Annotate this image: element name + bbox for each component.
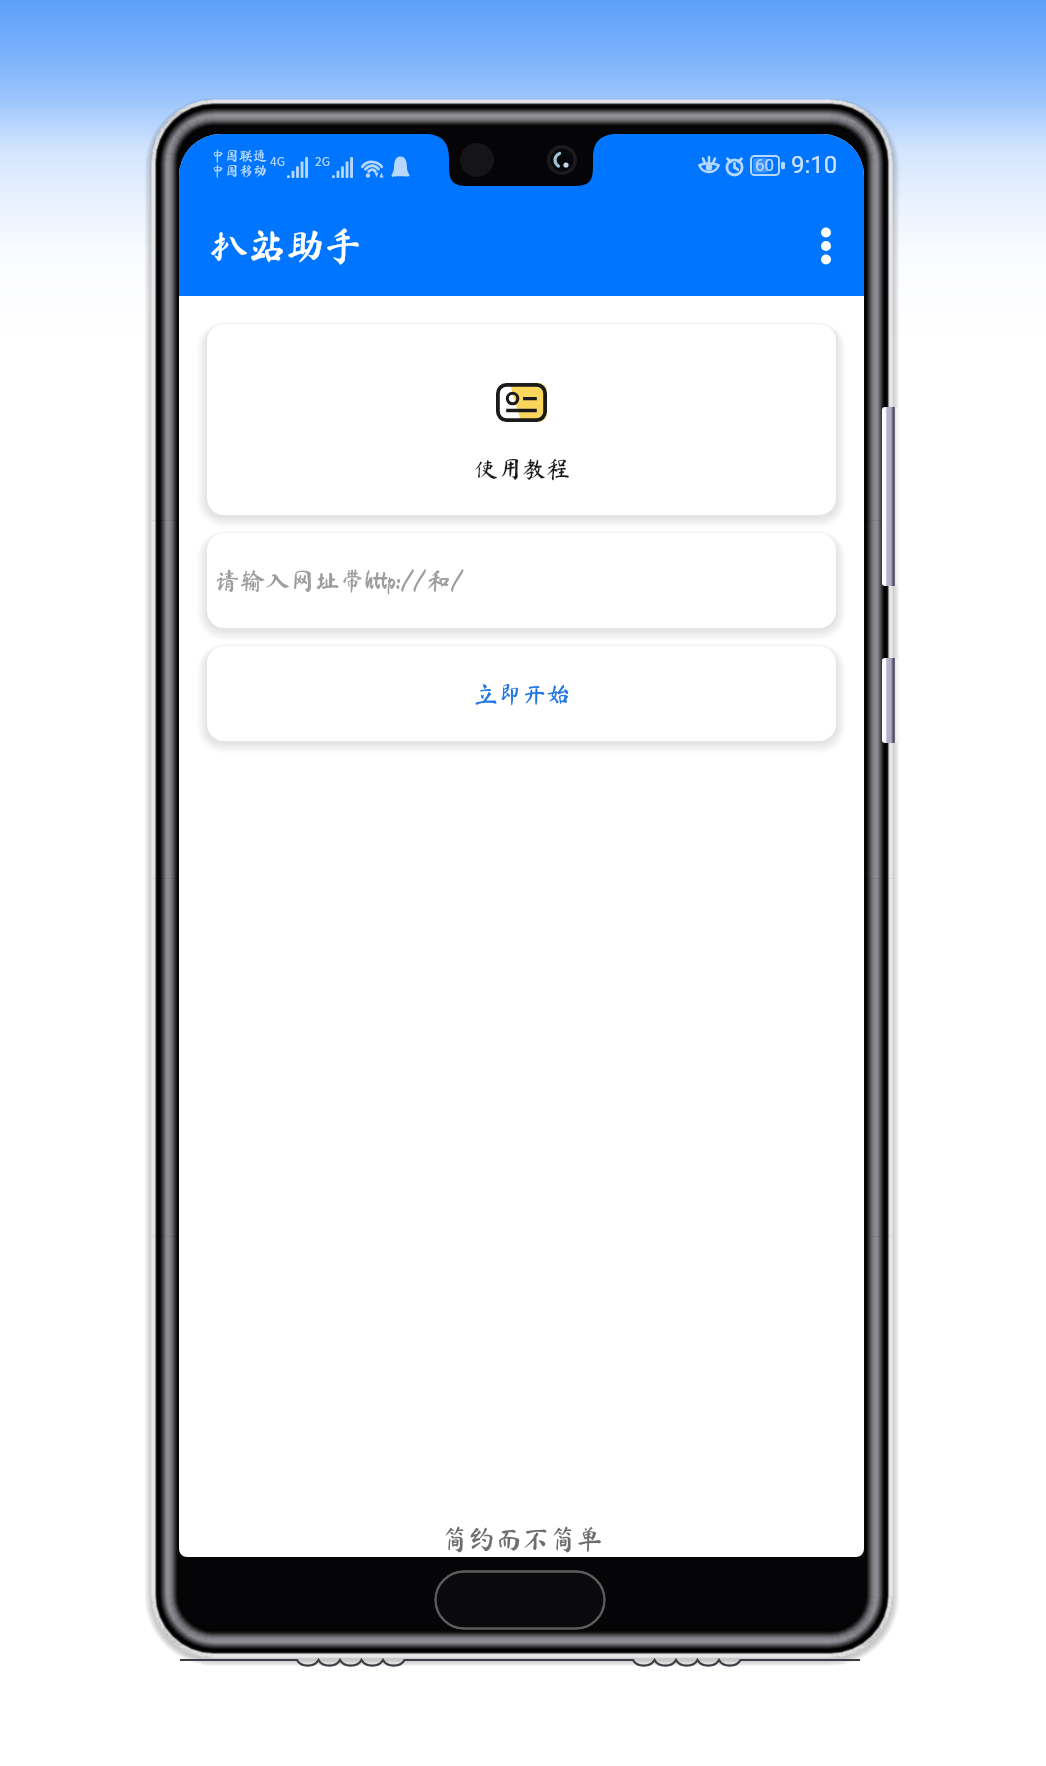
button[interactable]: Home (434, 1570, 606, 1630)
staticText: 4G (270, 152, 285, 169)
button[interactable]: 立即开始 (207, 646, 836, 741)
staticText: 使用教程 (474, 457, 570, 481)
staticText: 60 (755, 155, 775, 175)
button[interactable]: 请输入网址带http://和/ (207, 533, 836, 628)
staticText: 请输入网址带http://和/ (215, 568, 464, 593)
staticText: 立即开始 (474, 682, 570, 706)
staticText: 中国联通 (211, 149, 267, 163)
staticText: 扒站助手 (210, 227, 363, 265)
staticText: 中国移动 (211, 164, 267, 178)
button[interactable]: More options (788, 208, 864, 284)
staticText: 9:10 (791, 151, 838, 179)
staticText: 简约而不简单 (441, 1525, 603, 1552)
button[interactable]: 使用教程 (207, 324, 836, 515)
staticText: 2G (315, 152, 330, 169)
